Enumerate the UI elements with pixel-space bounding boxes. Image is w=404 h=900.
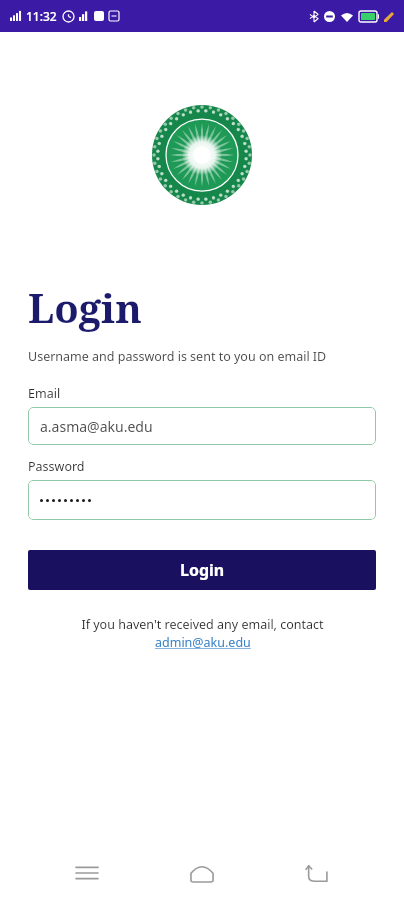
button[interactable]: Recent apps (59, 845, 115, 900)
staticText: Email (28, 385, 61, 402)
staticText: Login (180, 559, 225, 581)
staticText: Login (28, 280, 142, 334)
button[interactable]: admin@aku.edu (155, 634, 251, 651)
staticText: Password (28, 458, 85, 475)
staticText: a.asma@aku.edu (40, 417, 153, 436)
button[interactable]: Home (174, 845, 230, 900)
button[interactable] (28, 480, 376, 520)
staticText: If you haven't received any email, conta… (81, 616, 324, 633)
staticText: 11:32 (26, 8, 57, 24)
button[interactable]: Back (289, 845, 345, 900)
staticText: Username and password is sent to you on … (28, 348, 327, 365)
staticText: admin@aku.edu (155, 634, 251, 651)
button[interactable]: Login (28, 550, 376, 590)
button[interactable]: a.asma@aku.edu (28, 407, 376, 445)
